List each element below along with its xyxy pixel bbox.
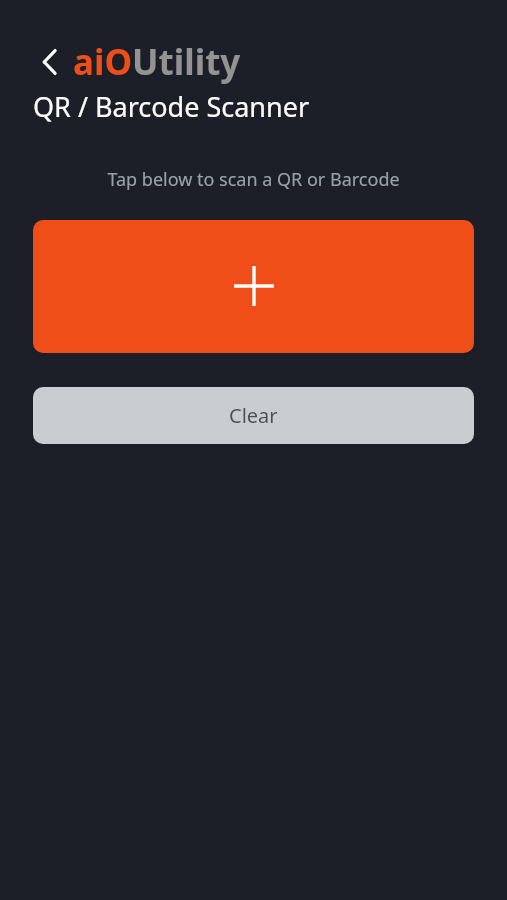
staticText: aiOUtility — [73, 38, 241, 86]
staticText: Clear — [229, 402, 278, 429]
button[interactable]: Scan QR or Barcode — [33, 220, 474, 353]
staticText: QR / Barcode Scanner — [33, 88, 310, 125]
button[interactable]: Clear — [33, 387, 474, 444]
staticText: Tap below to scan a QR or Barcode — [0, 167, 507, 192]
button[interactable]: Back — [33, 40, 67, 84]
